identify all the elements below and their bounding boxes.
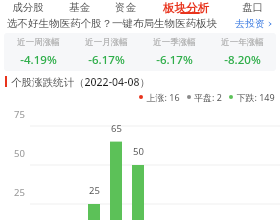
staticText: 上涨: 16 [146,91,180,103]
button[interactable]: 盘口 [224,0,280,15]
staticText: 近一月涨幅 [85,37,128,48]
staticText: 近一年涨幅 [221,37,264,48]
staticText: 板块分析 [163,1,209,15]
staticText: 选不好生物医药个股？一键布局生物医药板块 [7,17,217,30]
staticText: 基金 [69,1,90,14]
button[interactable]: 近一年涨幅 [208,33,276,71]
button[interactable]: 近一季涨幅 [140,33,208,71]
button[interactable]: 上涨: 16 [139,91,180,103]
staticText: 50 [14,147,25,160]
button[interactable]: 去投资 [234,17,274,30]
staticText: -4.19% [20,52,57,68]
staticText: 75 [14,108,25,121]
staticText: 近一周涨幅 [17,37,60,48]
button[interactable]: 平盘: 2 [187,91,222,103]
button[interactable]: 基金 [56,0,102,15]
staticText: 近一季涨幅 [153,37,196,48]
staticText: 25 [89,184,100,197]
staticText: 下跌: 149 [236,91,275,103]
staticText: 资金 [115,1,136,14]
button[interactable]: 板块分析 [148,0,224,15]
staticText: 50 [133,145,144,158]
other: Go invest [267,21,273,27]
staticText: -6.17% [156,52,193,68]
staticText: -6.17% [88,52,125,68]
button[interactable]: 下跌: 149 [229,91,275,103]
button[interactable]: 近一月涨幅 [72,33,140,71]
button[interactable]: 近一周涨幅 [4,33,72,71]
button[interactable]: 成分股 [0,0,56,15]
staticText: 个股涨跌统计（2022-04-08） [11,75,150,89]
staticText: 25 [14,186,25,199]
staticText: 盘口 [242,1,263,14]
staticText: -8.20% [224,52,261,68]
button[interactable]: 资金 [102,0,148,15]
staticText: 去投资 [235,17,265,30]
staticText: 平盘: 2 [194,91,222,103]
staticText: 成分股 [12,1,44,14]
staticText: 65 [111,122,122,135]
